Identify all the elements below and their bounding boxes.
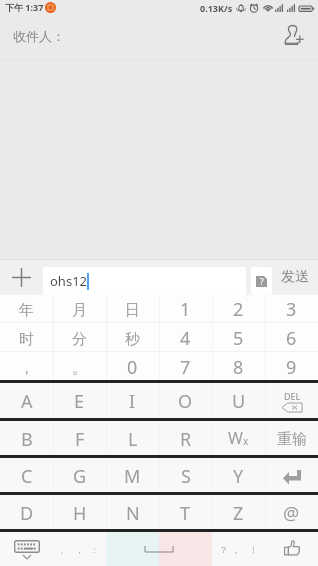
button[interactable]: 日 xyxy=(106,295,159,322)
button[interactable]: 3 xyxy=(265,295,318,322)
staticText: 0.13K/s xyxy=(200,2,233,14)
button[interactable]: ？ xyxy=(212,532,265,566)
staticText: 月 xyxy=(72,301,87,320)
button[interactable]: 8 xyxy=(212,352,265,380)
staticText: A xyxy=(21,389,33,414)
button[interactable]: 秒 xyxy=(106,323,159,351)
staticText: ， xyxy=(75,544,84,555)
staticText: 8 xyxy=(233,355,244,380)
button[interactable] xyxy=(265,458,318,492)
button[interactable]: 、 xyxy=(53,532,106,566)
button[interactable]: I xyxy=(106,383,159,418)
staticText: 收件人： xyxy=(13,28,65,44)
staticText: 。 xyxy=(234,544,243,555)
button[interactable]: ohs12 xyxy=(43,267,246,295)
staticText: 5 xyxy=(233,326,244,351)
staticText: Y xyxy=(233,464,244,489)
button[interactable]: H xyxy=(53,495,106,529)
button[interactable]: R xyxy=(159,421,212,455)
staticText: 2 xyxy=(233,297,244,322)
button[interactable]: G xyxy=(53,458,106,492)
button[interactable]: 。 xyxy=(53,352,106,380)
button[interactable]: A xyxy=(0,383,53,418)
staticText: 。 xyxy=(72,359,87,378)
staticText: L xyxy=(128,427,138,452)
button[interactable]: Thumbs up xyxy=(265,532,318,566)
button[interactable]: E xyxy=(53,383,106,418)
button[interactable]: 1 xyxy=(159,295,212,322)
button[interactable]: Symbol keyboard xyxy=(251,267,272,295)
staticText: Z xyxy=(233,501,244,526)
staticText: ? xyxy=(260,276,264,287)
staticText: 0 xyxy=(127,355,138,380)
staticText: @ xyxy=(283,501,300,526)
button[interactable]: T xyxy=(159,495,212,529)
staticText: D xyxy=(20,501,34,526)
staticText: 9 xyxy=(286,355,297,380)
staticText: 下午 1:37 xyxy=(5,1,44,13)
button[interactable]: F xyxy=(53,421,106,455)
staticText: N xyxy=(126,501,140,526)
staticText: W xyxy=(228,427,243,449)
staticText: G xyxy=(73,464,87,489)
staticText: S xyxy=(181,464,191,489)
staticText: 7 xyxy=(180,355,191,380)
staticText: ： xyxy=(90,544,99,555)
staticText: R xyxy=(180,427,192,452)
button[interactable]: C xyxy=(0,458,53,492)
staticText: 重输 xyxy=(277,430,307,449)
button[interactable]: U xyxy=(212,383,265,418)
staticText: 3 xyxy=(286,297,297,322)
staticText: x xyxy=(243,434,249,448)
button[interactable]: 2 xyxy=(212,295,265,322)
button[interactable]: Add attachment xyxy=(0,259,43,295)
button[interactable]: Y xyxy=(212,458,265,492)
button[interactable]: 4 xyxy=(159,323,212,351)
button[interactable]: N xyxy=(106,495,159,529)
button[interactable]: 0 xyxy=(106,352,159,380)
staticText: 秒 xyxy=(125,330,140,349)
button[interactable]: 月 xyxy=(53,295,106,322)
button[interactable]: @ xyxy=(265,495,318,529)
staticText: 1 xyxy=(180,297,191,322)
staticText: H xyxy=(73,501,87,526)
button[interactable]: DEL xyxy=(265,383,318,418)
staticText: U xyxy=(232,389,246,414)
staticText: C xyxy=(21,464,33,489)
staticText: O xyxy=(178,389,193,414)
button[interactable]: M xyxy=(106,458,159,492)
button[interactable]: 年 xyxy=(0,295,53,322)
staticText: ？ xyxy=(219,544,228,555)
staticText: 年 xyxy=(19,301,34,320)
button[interactable]: O xyxy=(159,383,212,418)
button[interactable]: 7 xyxy=(159,352,212,380)
staticText: 时 xyxy=(19,330,34,349)
button[interactable]: 重输 xyxy=(265,421,318,455)
button[interactable]: D xyxy=(0,495,53,529)
staticText: 4 xyxy=(180,326,191,351)
button[interactable]: W xyxy=(212,421,265,455)
staticText: B xyxy=(21,427,33,452)
button[interactable]: ， xyxy=(0,352,53,380)
staticText: ohs12 xyxy=(50,272,87,290)
button[interactable]: Z xyxy=(212,495,265,529)
button[interactable]: B xyxy=(0,421,53,455)
button[interactable]: 5 xyxy=(212,323,265,351)
button[interactable]: Space xyxy=(106,532,159,566)
button[interactable]: L xyxy=(106,421,159,455)
staticText: E xyxy=(74,389,85,414)
button[interactable]: S xyxy=(159,458,212,492)
button[interactable]: 分 xyxy=(53,323,106,351)
button[interactable]: Add recipient xyxy=(277,17,311,51)
button[interactable]: Space xyxy=(159,532,212,566)
staticText: 、 xyxy=(60,544,69,555)
button[interactable]: 发送 xyxy=(272,259,318,295)
button[interactable]: 6 xyxy=(265,323,318,351)
button[interactable]: 时 xyxy=(0,323,53,351)
staticText: T xyxy=(180,501,191,526)
button[interactable]: 9 xyxy=(265,352,318,380)
button[interactable]: Hide keyboard xyxy=(0,532,53,566)
staticText: 发送 xyxy=(281,268,309,286)
staticText: ， xyxy=(19,359,34,378)
staticText: M xyxy=(124,464,141,489)
